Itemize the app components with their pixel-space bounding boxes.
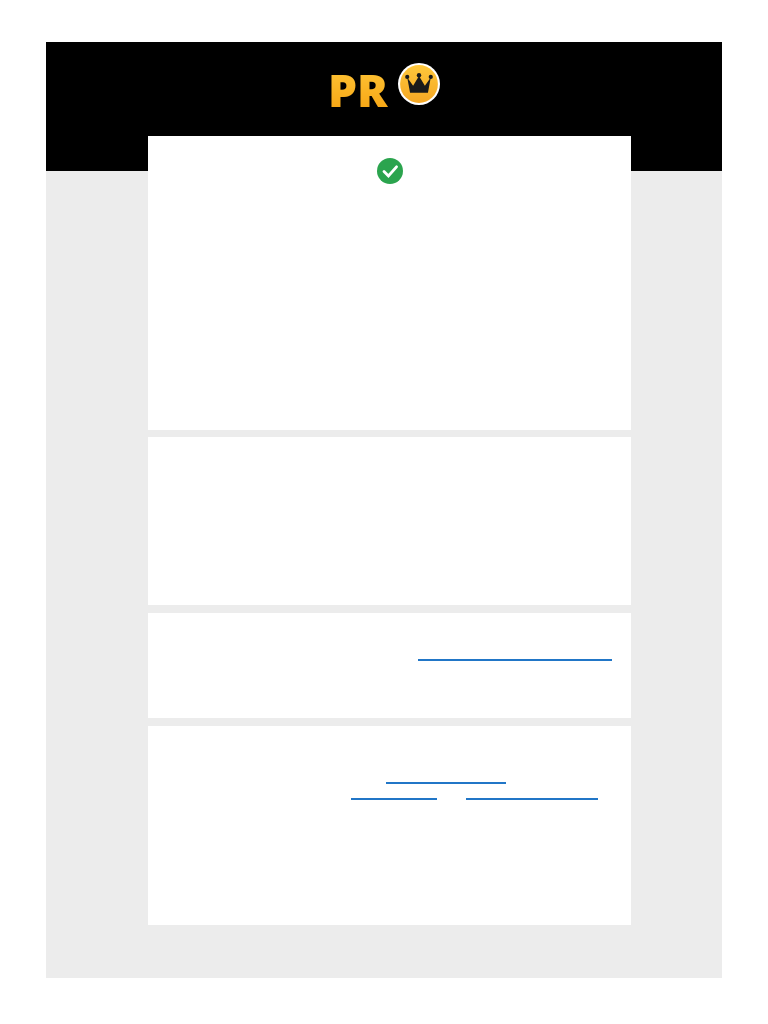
button[interactable]: Success bbox=[148, 136, 631, 430]
button[interactable]: Link bbox=[386, 772, 506, 784]
staticText: PR bbox=[328, 59, 389, 107]
button[interactable]: Link bbox=[148, 726, 631, 925]
button[interactable]: Link bbox=[148, 613, 631, 718]
button[interactable]: Link bbox=[418, 649, 612, 661]
button[interactable]: PRO bbox=[328, 60, 440, 108]
button[interactable]: Success bbox=[377, 158, 403, 184]
button[interactable]: Link bbox=[466, 788, 598, 800]
button[interactable]: Link bbox=[351, 788, 437, 800]
